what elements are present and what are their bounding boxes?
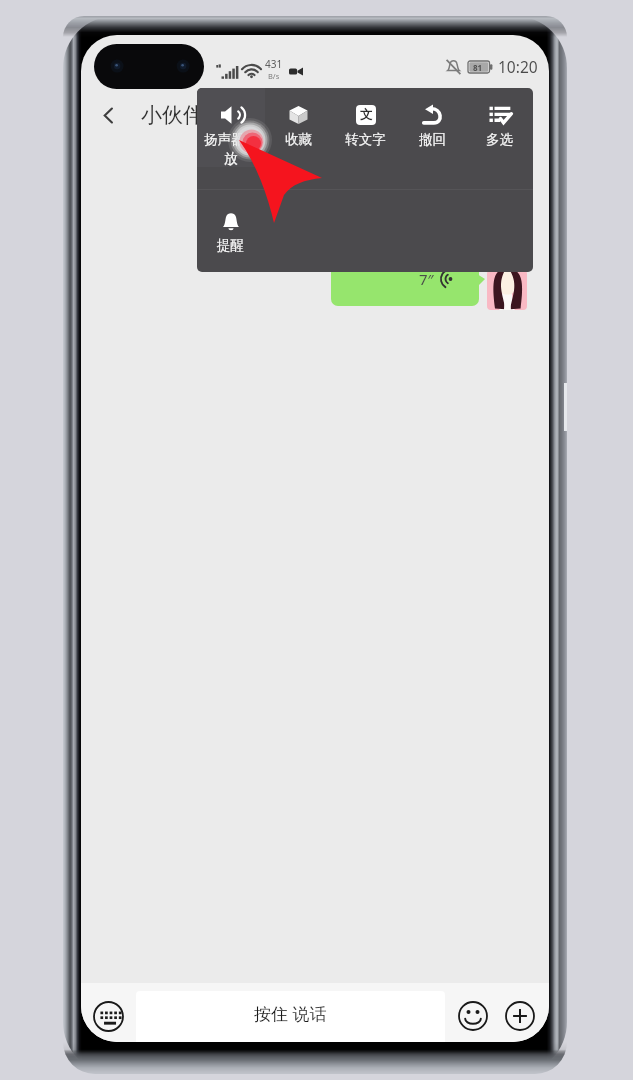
staticText: B/s — [268, 71, 280, 81]
button[interactable]: Back — [87, 94, 129, 136]
button[interactable]: 7″ — [331, 250, 479, 306]
staticText: 81 — [473, 62, 483, 73]
button[interactable]: Emoji — [452, 995, 494, 1037]
button[interactable]: 收藏 — [265, 88, 332, 148]
staticText: 多选 — [486, 131, 513, 148]
staticText: 撤回 — [419, 131, 446, 148]
staticText: 收藏 — [285, 131, 312, 148]
button[interactable]: 按住 说话 — [136, 991, 445, 1042]
button[interactable]: 多选 — [466, 88, 533, 148]
staticText: 10:20 — [498, 56, 538, 77]
button[interactable]: 文 — [332, 88, 399, 148]
staticText: 提醒 — [217, 237, 244, 254]
button[interactable]: More — [499, 995, 541, 1037]
button[interactable]: Avatar — [487, 270, 527, 310]
button[interactable]: Keyboard — [87, 995, 129, 1037]
button[interactable]: 提醒 — [197, 190, 264, 254]
staticText: 小伙伴 — [141, 102, 204, 128]
staticText: 扬声器播 放 — [204, 131, 258, 167]
staticText: 7″ — [419, 269, 434, 289]
staticText: 431 — [265, 57, 283, 71]
staticText: 转文字 — [345, 131, 386, 148]
staticText: 按住 说话 — [254, 1002, 327, 1025]
button[interactable]: 撤回 — [399, 88, 466, 148]
staticText: 文 — [360, 107, 373, 123]
button[interactable]: 扬声器播 放 — [197, 88, 265, 167]
